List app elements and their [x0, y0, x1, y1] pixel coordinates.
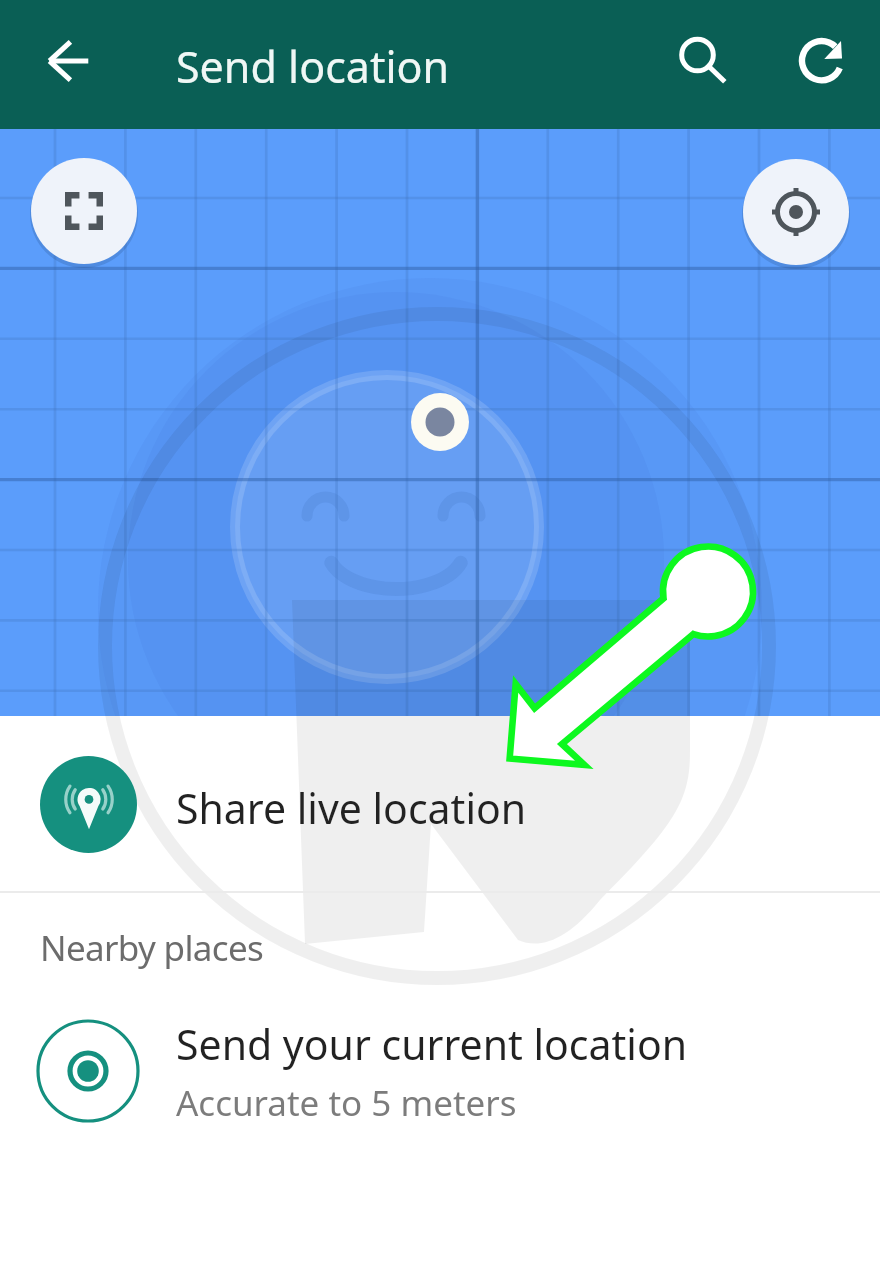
staticText: Send your current location [176, 1016, 688, 1072]
staticText: Nearby places [40, 924, 264, 972]
staticText: Accurate to 5 meters [176, 1079, 517, 1127]
button[interactable]: My location [743, 159, 849, 265]
button[interactable]: Search [656, 14, 740, 98]
button[interactable]: Send your current location [0, 988, 880, 1154]
staticText: Send location [176, 37, 450, 96]
staticText: Share live location [176, 780, 527, 836]
button[interactable]: Back [28, 25, 108, 105]
button[interactable]: Expand map [31, 158, 137, 264]
button[interactable]: Share live location [0, 716, 880, 892]
button[interactable]: Refresh [779, 18, 865, 104]
